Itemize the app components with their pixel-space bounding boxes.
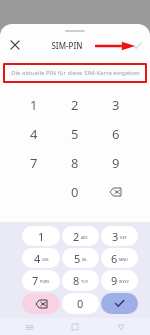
staticText: Die aktuelle PIN für diese SIM-Karte ein… bbox=[11, 69, 140, 77]
button[interactable]: Back bbox=[114, 320, 128, 334]
staticText: 6 bbox=[111, 251, 118, 266]
button[interactable]: 9 bbox=[101, 270, 138, 291]
staticText: 5 bbox=[74, 251, 81, 266]
button[interactable]: 2 bbox=[54, 90, 95, 119]
staticText: 5 bbox=[71, 125, 79, 143]
staticText: 9 bbox=[112, 154, 120, 172]
staticText: 1 bbox=[30, 96, 38, 114]
staticText: 6 bbox=[112, 125, 120, 143]
button[interactable]: 5 bbox=[62, 248, 99, 268]
staticText: 3 bbox=[112, 96, 120, 114]
button[interactable]: Recents bbox=[22, 320, 36, 334]
staticText: 8 bbox=[73, 273, 80, 288]
button[interactable]: 3 bbox=[95, 90, 136, 119]
button[interactable]: 0 bbox=[62, 293, 99, 314]
button[interactable]: 7 bbox=[14, 148, 54, 177]
staticText: 7 bbox=[30, 154, 38, 172]
staticText: DEF bbox=[120, 235, 127, 240]
staticText: 4 bbox=[30, 125, 38, 143]
button[interactable]: Confirm bbox=[128, 36, 146, 54]
staticText: 9 bbox=[111, 273, 118, 288]
button[interactable]: 1 bbox=[22, 226, 60, 246]
button[interactable]: Backspace bbox=[22, 293, 60, 314]
staticText: 0 bbox=[71, 183, 79, 201]
button[interactable]: 4 bbox=[22, 248, 60, 268]
button[interactable]: 2 bbox=[62, 226, 99, 246]
button[interactable]: 8 bbox=[54, 148, 95, 177]
button[interactable]: 3 bbox=[101, 226, 138, 246]
staticText: TUV bbox=[81, 279, 88, 284]
button[interactable]: 6 bbox=[95, 119, 136, 148]
button[interactable]: 4 bbox=[14, 119, 54, 148]
button[interactable]: Enter bbox=[101, 293, 138, 314]
button[interactable]: 7 bbox=[22, 270, 60, 291]
staticText: 7 bbox=[32, 273, 39, 288]
staticText: WXYZ bbox=[119, 279, 129, 284]
staticText: 3 bbox=[112, 229, 119, 244]
button[interactable]: 9 bbox=[95, 148, 136, 177]
staticText: 8 bbox=[71, 154, 79, 172]
staticText: PQRS bbox=[40, 279, 50, 284]
button[interactable]: 8 bbox=[62, 270, 99, 291]
staticText: 2 bbox=[73, 229, 80, 244]
button[interactable]: Die aktuelle PIN für diese SIM-Karte ein… bbox=[5, 65, 145, 81]
staticText: JKL bbox=[82, 257, 88, 262]
staticText: ABC bbox=[81, 235, 88, 240]
staticText: 2 bbox=[71, 96, 79, 114]
staticText: GHI bbox=[42, 257, 49, 262]
button[interactable]: Close bbox=[5, 35, 25, 55]
staticText: 1 bbox=[38, 229, 45, 244]
button[interactable]: Delete bbox=[95, 177, 136, 206]
button[interactable]: 1 bbox=[14, 90, 54, 119]
button[interactable]: Home bbox=[68, 320, 82, 334]
button[interactable]: 0 bbox=[54, 177, 95, 206]
staticText: 4 bbox=[34, 251, 41, 266]
button[interactable]: 6 bbox=[101, 248, 138, 268]
staticText: 0 bbox=[77, 296, 84, 311]
staticText: SIM-PIN bbox=[51, 40, 83, 51]
staticText: MNO bbox=[119, 257, 128, 262]
button[interactable]: 5 bbox=[54, 119, 95, 148]
